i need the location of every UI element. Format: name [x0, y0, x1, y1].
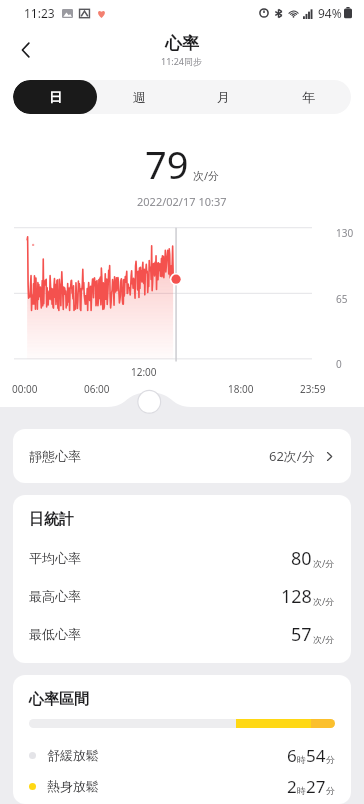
staticText: 62次/分: [269, 447, 315, 465]
staticText: 11:24同步: [161, 55, 203, 67]
staticText: 日: [49, 89, 62, 105]
staticText: 23:59: [300, 382, 326, 396]
button[interactable]: 週: [97, 80, 181, 114]
staticText: 心率: [165, 33, 199, 54]
staticText: 27: [306, 775, 326, 798]
staticText: 128: [281, 584, 312, 609]
staticText: 心率區間: [29, 690, 89, 709]
staticText: 2022/02/17 10:37: [137, 194, 227, 209]
staticText: 時: [297, 785, 306, 796]
button[interactable]: 靜態心率: [13, 429, 351, 483]
staticText: 次/分: [313, 595, 335, 607]
staticText: 0: [336, 357, 342, 371]
staticText: 週: [133, 89, 146, 105]
staticText: 分: [326, 754, 335, 765]
staticText: 次/分: [313, 633, 335, 645]
button[interactable]: 月: [181, 80, 266, 114]
staticText: 月: [217, 89, 230, 105]
button[interactable]: 熱身放鬆: [13, 772, 351, 800]
staticText: 00:00: [12, 382, 38, 396]
button[interactable]: 日: [13, 80, 97, 114]
staticText: 舒緩放鬆: [47, 747, 99, 763]
staticText: 94%: [318, 5, 342, 21]
staticText: 靜態心率: [29, 448, 81, 464]
staticText: 時: [297, 754, 306, 765]
staticText: 57: [291, 622, 312, 647]
staticText: 次/分: [313, 557, 335, 569]
staticText: 熱身放鬆: [47, 778, 99, 794]
button[interactable]: Back: [6, 30, 46, 70]
staticText: 6: [287, 744, 297, 767]
staticText: 年: [302, 89, 315, 105]
staticText: 18:00: [228, 382, 254, 396]
staticText: 130: [336, 226, 354, 240]
staticText: 日統計: [29, 510, 74, 529]
staticText: 65: [336, 292, 348, 306]
staticText: 最高心率: [29, 588, 81, 604]
staticText: 06:00: [84, 382, 110, 396]
staticText: 54: [306, 744, 326, 767]
staticText: 平均心率: [29, 550, 81, 566]
staticText: 2: [287, 775, 297, 798]
button[interactable]: 年: [266, 80, 351, 114]
staticText: 次/分: [193, 168, 220, 183]
staticText: 最低心率: [29, 626, 81, 642]
staticText: 12:00: [131, 365, 157, 379]
staticText: 80: [291, 546, 312, 571]
staticText: 11:23: [24, 5, 55, 21]
button[interactable]: 舒緩放鬆: [13, 738, 351, 772]
staticText: 79: [145, 138, 189, 190]
staticText: 分: [326, 785, 335, 796]
